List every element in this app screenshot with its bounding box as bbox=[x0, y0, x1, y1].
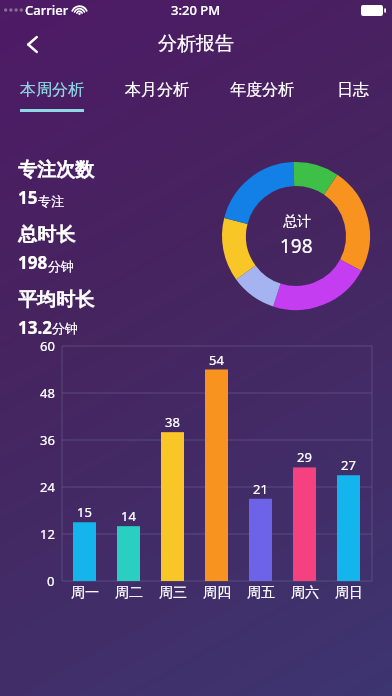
button[interactable]: 周日 bbox=[332, 584, 365, 602]
staticText: 分钟 bbox=[48, 258, 74, 274]
staticText: 年度分析 bbox=[230, 80, 294, 100]
staticText: 专注次数 bbox=[18, 158, 94, 182]
staticText: 48 bbox=[40, 384, 55, 402]
button[interactable]: 周一 bbox=[68, 584, 101, 602]
staticText: 54 bbox=[209, 351, 224, 369]
staticText: 27 bbox=[341, 456, 356, 474]
staticText: 14 bbox=[121, 507, 136, 525]
staticText: 3:20 PM bbox=[171, 1, 221, 19]
staticText: 周四 bbox=[203, 584, 231, 602]
staticText: 周三 bbox=[159, 584, 187, 602]
staticText: 周二 bbox=[115, 584, 143, 602]
staticText: 周日 bbox=[335, 584, 363, 602]
button[interactable]: 周六 bbox=[288, 584, 321, 602]
button[interactable]: 周二 bbox=[112, 584, 145, 602]
staticText: 29 bbox=[297, 448, 312, 466]
staticText: 0 bbox=[47, 572, 55, 590]
staticText: 本周分析 bbox=[20, 80, 84, 100]
staticText: 38 bbox=[165, 413, 180, 431]
staticText: 专注 bbox=[38, 193, 64, 209]
staticText: 13.2 bbox=[18, 316, 52, 336]
staticText: 总计 bbox=[283, 213, 311, 231]
button[interactable]: 本月分析 bbox=[104, 68, 209, 124]
button[interactable]: 周四 bbox=[200, 584, 233, 602]
button[interactable]: 周三 bbox=[156, 584, 189, 602]
staticText: 周六 bbox=[291, 584, 319, 602]
staticText: 198 bbox=[280, 233, 313, 259]
staticText: 平均时长 bbox=[18, 288, 94, 312]
staticText: 周一 bbox=[71, 584, 99, 602]
button[interactable]: 日志 bbox=[314, 68, 392, 124]
staticText: 分析报告 bbox=[158, 32, 234, 56]
button[interactable]: Back bbox=[10, 22, 54, 66]
staticText: 21 bbox=[253, 480, 268, 498]
staticText: 日志 bbox=[337, 80, 369, 100]
staticText: 36 bbox=[40, 431, 55, 449]
button[interactable]: 年度分析 bbox=[209, 68, 314, 124]
staticText: 周五 bbox=[247, 584, 275, 602]
staticText: 12 bbox=[40, 525, 55, 543]
staticText: 24 bbox=[40, 478, 55, 496]
button[interactable]: 本周分析 bbox=[0, 68, 104, 124]
button[interactable]: 周五 bbox=[244, 584, 277, 602]
staticText: 15 bbox=[77, 503, 92, 521]
staticText: 本月分析 bbox=[125, 80, 189, 100]
staticText: 总时长 bbox=[18, 223, 75, 247]
staticText: 15 bbox=[18, 186, 38, 209]
staticText: 60 bbox=[40, 337, 55, 355]
staticText: 198 bbox=[18, 251, 48, 274]
staticText: 分钟 bbox=[52, 320, 78, 336]
staticText: Carrier bbox=[25, 1, 69, 19]
